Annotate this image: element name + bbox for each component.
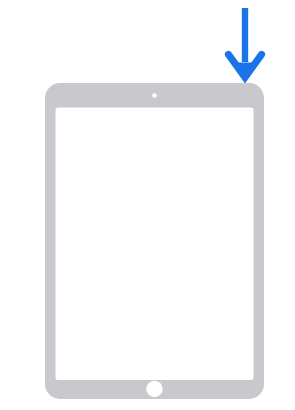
- button[interactable]: Tablet with arrow pointing to top right …: [0, 0, 295, 410]
